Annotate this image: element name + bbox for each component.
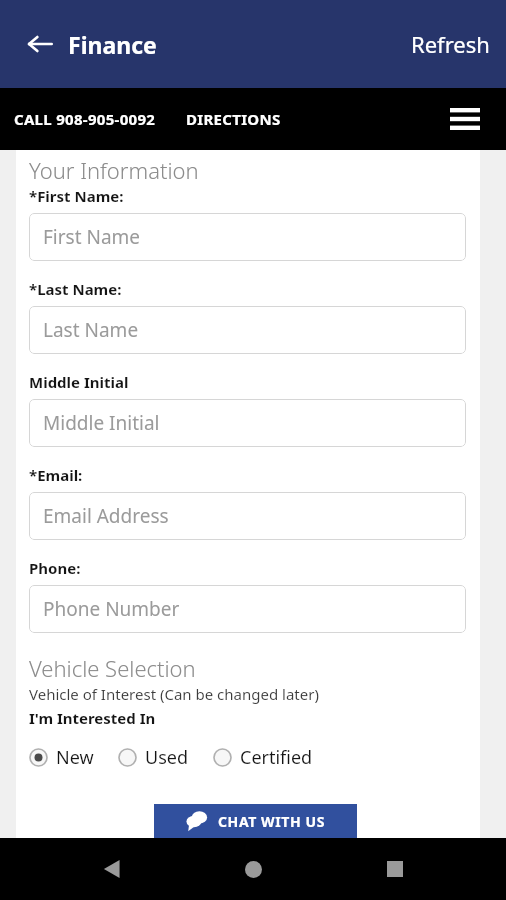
staticText: Refresh — [411, 29, 490, 59]
button[interactable]: Menu — [442, 96, 488, 142]
staticText: Last Name — [43, 317, 139, 343]
staticText: Finance — [68, 29, 157, 60]
button[interactable]: Home — [223, 839, 283, 899]
staticText: *Email: — [29, 465, 83, 485]
button[interactable]: CALL 908-905-0092 — [14, 99, 156, 139]
staticText: Vehicle Selection — [29, 653, 196, 683]
staticText: Phone: — [29, 558, 81, 578]
button[interactable]: Finance — [68, 21, 157, 68]
staticText: CHAT WITH US — [218, 812, 326, 831]
staticText: New — [56, 745, 94, 770]
button[interactable]: Back — [16, 20, 64, 68]
button[interactable]: Middle Initial — [29, 399, 466, 447]
button[interactable]: New — [29, 745, 94, 770]
staticText: First Name — [43, 224, 141, 250]
staticText: Email Address — [43, 503, 169, 529]
staticText: Vehicle of Interest (Can be changed late… — [29, 684, 319, 704]
button[interactable]: DIRECTIONS — [186, 99, 281, 139]
staticText: CALL 908-905-0092 — [14, 109, 156, 129]
button[interactable]: Certified — [213, 745, 313, 770]
button[interactable]: Email Address — [29, 492, 466, 540]
staticText: Your Information — [29, 155, 199, 185]
button[interactable]: CHAT WITH US — [154, 804, 357, 838]
button[interactable]: Phone Number — [29, 585, 466, 633]
button[interactable]: Used — [118, 745, 189, 770]
staticText: Used — [145, 745, 189, 770]
staticText: Middle Initial — [29, 372, 129, 392]
staticText: Phone Number — [43, 596, 180, 622]
staticText: DIRECTIONS — [186, 109, 281, 129]
staticText: Certified — [240, 745, 313, 770]
staticText: *First Name: — [29, 186, 124, 206]
button[interactable]: Back — [82, 839, 142, 899]
button[interactable]: Recent apps — [365, 839, 425, 899]
staticText: *Last Name: — [29, 279, 122, 299]
staticText: Middle Initial — [43, 410, 160, 436]
button[interactable]: Last Name — [29, 306, 466, 354]
button[interactable]: Refresh — [399, 19, 502, 69]
staticText: I'm Interested In — [29, 708, 156, 728]
button[interactable]: First Name — [29, 213, 466, 261]
